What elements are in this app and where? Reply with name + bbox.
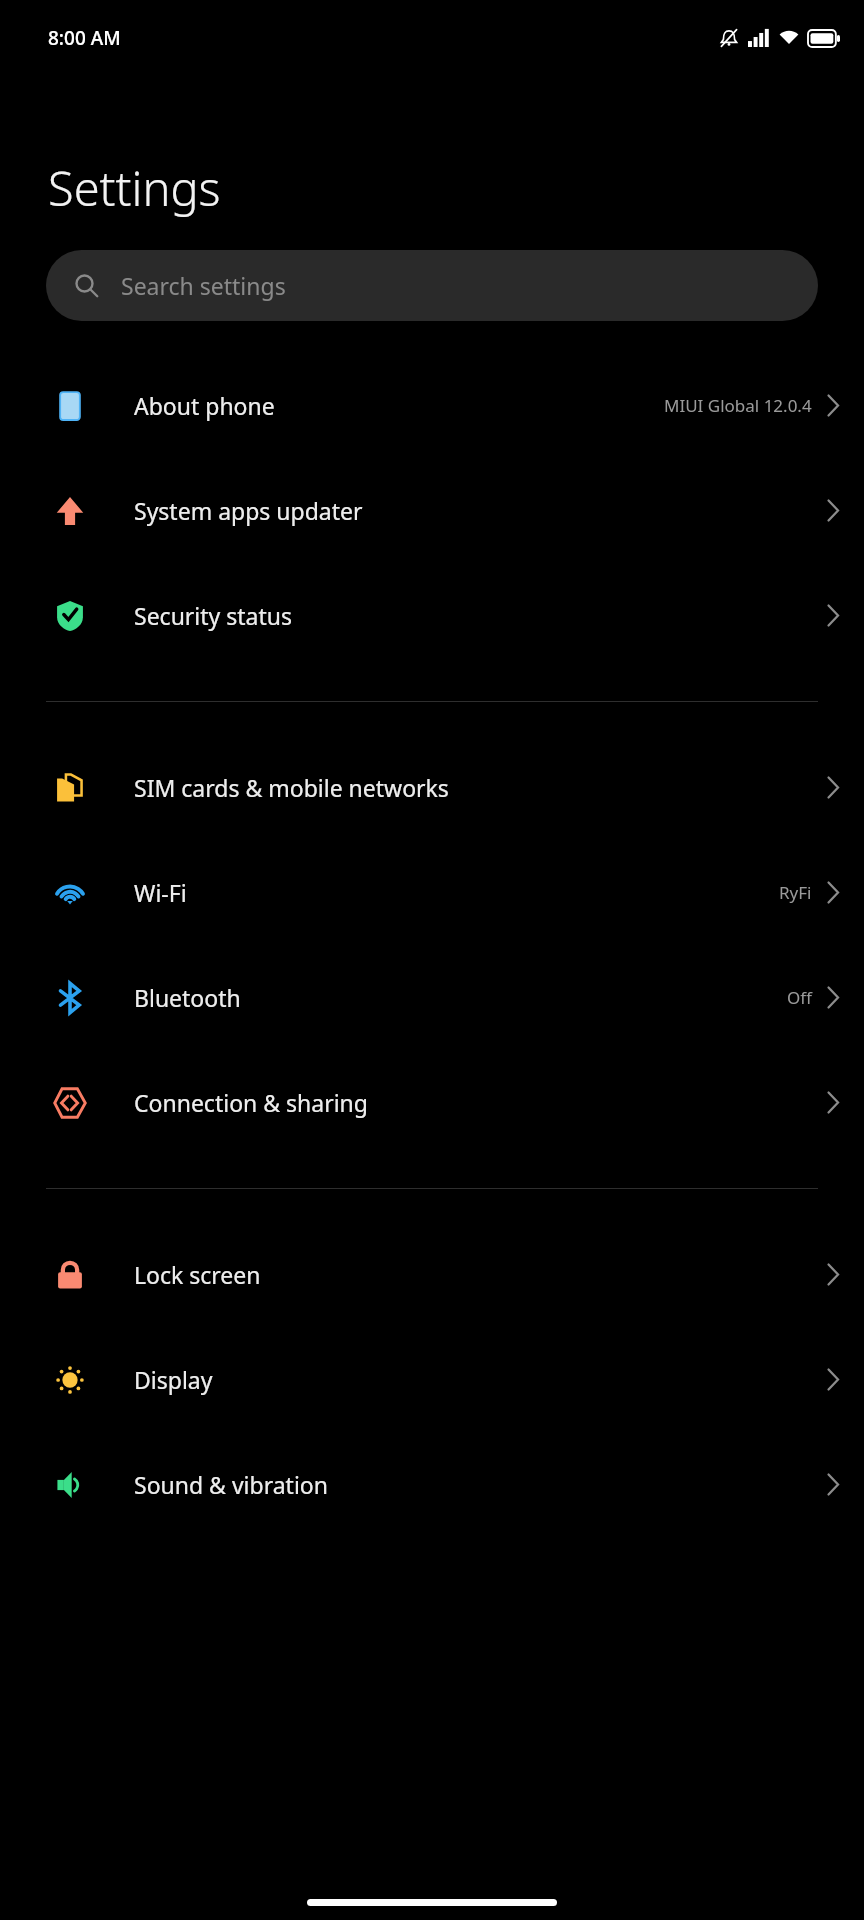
staticText: Connection & sharing [134, 1087, 368, 1118]
button[interactable]: Security status [0, 563, 864, 668]
staticText: SIM cards & mobile networks [134, 772, 449, 803]
other: Home indicator [307, 1899, 557, 1906]
button[interactable]: System apps updater [0, 458, 864, 563]
staticText: System apps updater [134, 495, 363, 526]
staticText: Off [787, 986, 812, 1009]
button[interactable]: SIM cards & mobile networks [0, 735, 864, 840]
button[interactable]: About phone [0, 353, 864, 458]
staticText: MIUI Global 12.0.4 [664, 394, 812, 417]
staticText: Sound & vibration [134, 1469, 328, 1500]
button[interactable]: Lock screen [0, 1222, 864, 1327]
button[interactable]: Connection & sharing [0, 1050, 864, 1155]
button[interactable]: Sound & vibration [0, 1432, 864, 1537]
button[interactable]: Search settings [46, 250, 818, 321]
staticText: Lock screen [134, 1259, 261, 1290]
staticText: About phone [134, 390, 275, 421]
button[interactable]: Wi-Fi [0, 840, 864, 945]
button[interactable]: Bluetooth [0, 945, 864, 1050]
staticText: Settings [48, 156, 221, 220]
staticText: Bluetooth [134, 982, 241, 1013]
staticText: Search settings [121, 270, 286, 301]
staticText: Security status [134, 600, 293, 631]
staticText: 8:00 AM [48, 25, 121, 51]
staticText: RyFi [779, 881, 812, 904]
button[interactable]: Display [0, 1327, 864, 1432]
staticText: Wi-Fi [134, 877, 187, 908]
staticText: Display [134, 1364, 213, 1395]
